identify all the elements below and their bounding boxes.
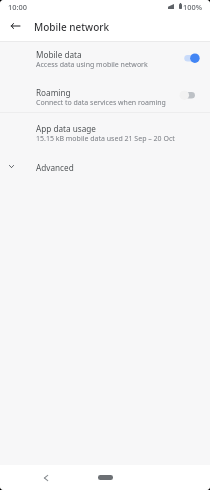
button[interactable]: Roaming xyxy=(0,87,210,111)
button[interactable]: Mobile data xyxy=(0,49,210,73)
button[interactable]: Back xyxy=(4,15,26,37)
staticText: Mobile data xyxy=(36,49,82,60)
button[interactable]: Switch on xyxy=(176,44,204,72)
button[interactable]: Switch off xyxy=(176,81,204,109)
staticText: Connect to data services when roaming xyxy=(36,98,166,108)
staticText: 10:00 xyxy=(8,2,27,12)
staticText: 15.15 kB mobile data used 21 Sep – 20 Oc… xyxy=(36,134,175,144)
staticText: Advanced xyxy=(36,162,74,173)
staticText: 100% xyxy=(183,2,202,12)
staticText: Access data using mobile network xyxy=(36,60,148,70)
button[interactable]: Back xyxy=(36,468,55,487)
button[interactable]: App data usage xyxy=(0,123,210,147)
button[interactable]: Home xyxy=(94,471,116,484)
staticText: App data usage xyxy=(36,123,96,134)
staticText: Roaming xyxy=(36,87,71,98)
button[interactable]: Advanced xyxy=(0,154,210,180)
staticText: Mobile network xyxy=(34,20,110,34)
